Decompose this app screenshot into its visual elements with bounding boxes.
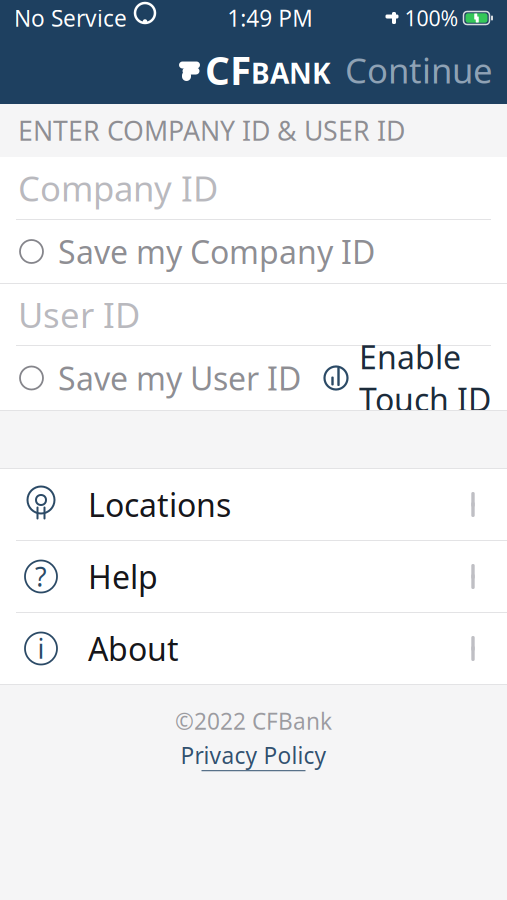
staticText: Locations: [88, 483, 231, 526]
button[interactable]: i: [0, 613, 507, 684]
staticText: 100%: [404, 4, 458, 32]
staticText: No Service: [14, 3, 127, 33]
staticText: i: [37, 631, 44, 666]
staticText: User ID: [18, 291, 140, 337]
button[interactable]: ?: [0, 541, 507, 612]
button[interactable]: Continue: [331, 39, 507, 101]
button[interactable]: Enable Touch ID: [323, 327, 507, 428]
button[interactable]: Save my Company ID: [0, 220, 507, 283]
staticText: Save my Company ID: [58, 230, 375, 273]
staticText: Privacy Policy: [180, 740, 326, 770]
staticText: Enable Touch ID: [359, 335, 491, 420]
staticText: 1:49 PM: [227, 3, 313, 33]
button[interactable]: Save my User ID: [0, 349, 301, 407]
staticText: About: [88, 627, 179, 670]
button[interactable]: Privacy Policy: [172, 738, 334, 773]
staticText: Save my User ID: [58, 357, 301, 399]
staticText: ?: [35, 559, 47, 594]
staticText: Continue: [345, 47, 493, 93]
button[interactable]: Locations: [0, 469, 507, 540]
staticText: Help: [88, 555, 158, 598]
staticText: CF: [205, 44, 251, 96]
staticText: BANK: [251, 54, 331, 92]
staticText: ©2022 CFBank: [175, 706, 332, 736]
staticText: ENTER COMPANY ID & USER ID: [18, 113, 405, 148]
staticText: Company ID: [18, 165, 218, 211]
